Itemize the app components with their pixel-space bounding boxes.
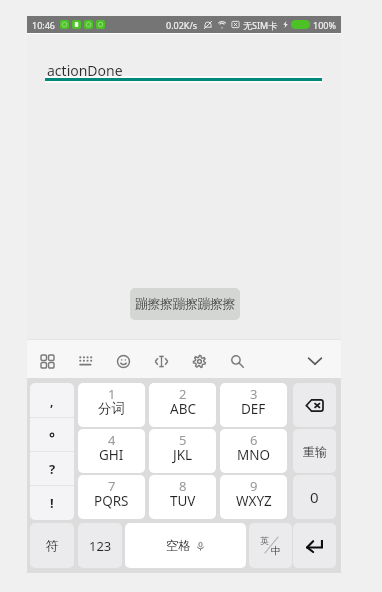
staticText: 10:46 — [32, 19, 56, 31]
staticText: 无SIM卡 — [243, 19, 278, 31]
button[interactable]: ? — [30, 452, 74, 486]
staticText: 蹦擦擦蹦擦蹦擦擦 — [135, 296, 235, 312]
button[interactable]: 3 — [220, 383, 287, 427]
button[interactable]: Emoji — [107, 345, 139, 377]
staticText: ? — [49, 460, 56, 478]
button[interactable]: Hide keyboard — [299, 345, 331, 377]
button[interactable]: ! — [30, 486, 74, 520]
button[interactable]: 8 — [149, 475, 216, 519]
staticText: GHI — [99, 446, 124, 464]
staticText: actionDone — [47, 61, 123, 80]
button[interactable]: 2 — [149, 383, 216, 427]
button[interactable] — [30, 418, 74, 452]
staticText: 6 — [250, 431, 258, 449]
staticText: 123 — [89, 537, 112, 555]
staticText: MNO — [237, 446, 271, 464]
staticText: 100% — [313, 19, 336, 31]
staticText: 4 — [108, 431, 116, 449]
button[interactable]: 5 — [149, 429, 216, 473]
staticText: 2 — [179, 385, 187, 403]
staticText: WXYZ — [236, 492, 272, 510]
button[interactable]: , — [30, 383, 74, 418]
button[interactable]: 空格 — [125, 523, 246, 568]
staticText: ! — [50, 494, 54, 512]
staticText: 3 — [250, 385, 258, 403]
button[interactable]: 1 — [78, 383, 145, 427]
button[interactable]: 9 — [220, 475, 287, 519]
button[interactable]: 英 — [249, 523, 292, 568]
button[interactable]: 符 — [30, 523, 74, 568]
staticText: 7 — [108, 477, 116, 495]
button[interactable]: 重输 — [293, 429, 336, 473]
staticText: JKL — [173, 446, 193, 464]
staticText: 中 — [271, 544, 281, 557]
staticText: 符 — [46, 538, 59, 554]
button[interactable]: Enter — [293, 523, 336, 568]
staticText: 5 — [179, 431, 187, 449]
staticText: 重输 — [303, 444, 327, 459]
button[interactable]: 123 — [78, 523, 122, 568]
button[interactable]: 7 — [78, 475, 145, 519]
staticText: 9 — [250, 477, 258, 495]
staticText: 0.02K/s — [166, 19, 198, 31]
staticText: PQRS — [94, 492, 129, 510]
staticText: , — [50, 393, 54, 409]
button[interactable]: Settings — [183, 345, 215, 377]
staticText: ABC — [170, 400, 196, 418]
staticText: 英 — [260, 535, 269, 546]
staticText: 1 — [108, 385, 116, 403]
button[interactable]: Apps — [31, 345, 63, 377]
staticText: 0 — [310, 487, 319, 507]
button[interactable]: 0 — [293, 475, 336, 519]
button[interactable]: Cursor — [145, 345, 177, 377]
button[interactable]: 6 — [220, 429, 287, 473]
button[interactable]: Keyboard — [69, 345, 101, 377]
button[interactable]: 4 — [78, 429, 145, 473]
staticText: TUV — [170, 492, 196, 510]
button[interactable]: Search — [221, 345, 253, 377]
button[interactable]: Backspace — [293, 383, 336, 427]
staticText: DEF — [241, 400, 266, 418]
staticText: 分词 — [98, 400, 125, 417]
staticText: 8 — [179, 477, 187, 495]
staticText: 空格 — [166, 538, 191, 554]
